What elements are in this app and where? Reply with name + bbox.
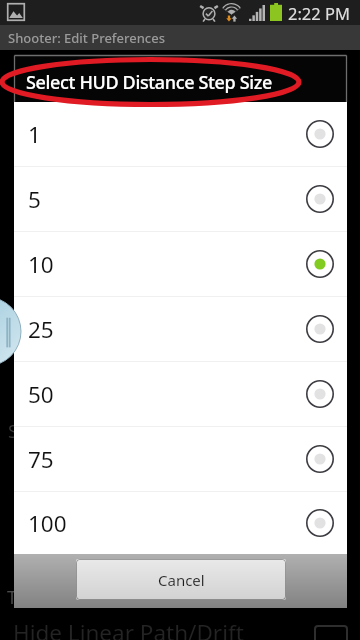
button[interactable]: 1 [14, 102, 347, 166]
staticText: Select HUD Distance Step Size [26, 70, 273, 95]
staticText: 2:22 PM [288, 2, 350, 24]
button[interactable]: 10 [14, 232, 347, 296]
staticText: Shooter: Edit Preferences [8, 29, 165, 47]
button[interactable]: 75 [14, 427, 347, 491]
staticText: 75 [28, 444, 54, 475]
staticText: 1 [28, 119, 41, 150]
button[interactable]: 5 [14, 167, 347, 231]
button[interactable]: 50 [14, 362, 347, 426]
staticText: 50 [28, 379, 54, 410]
button[interactable]: Multi window handle [0, 297, 21, 366]
button[interactable]: 100 [14, 492, 347, 554]
staticText: 5 [28, 184, 41, 215]
staticText: Target Lead Indicator [7, 585, 188, 610]
staticText: Show HUD Distance Marks [8, 419, 233, 444]
button[interactable]: 25 [14, 297, 347, 361]
staticText: Cancel [158, 570, 205, 590]
staticText: 100 [28, 508, 67, 539]
button[interactable]: Cancel [76, 559, 286, 600]
staticText: 25 [28, 314, 54, 345]
staticText: 10 [28, 249, 54, 280]
staticText: Hide Linear Path/Drift [13, 617, 244, 640]
